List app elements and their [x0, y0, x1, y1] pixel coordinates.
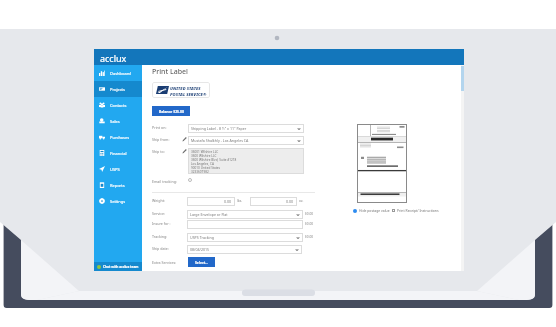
button[interactable]: Large Envelope or Flat	[187, 210, 303, 219]
button[interactable]: USPS Tracking	[187, 233, 303, 242]
button[interactable]: Reports	[94, 177, 142, 193]
staticText: Print Receipt/ Instructions	[397, 208, 439, 213]
staticText: Service:	[152, 211, 165, 216]
staticText: Financial	[110, 151, 127, 156]
staticText: Email tracking:	[152, 179, 177, 184]
button[interactable]: 0.00	[187, 197, 235, 206]
staticText: Tracking:	[152, 234, 168, 239]
button[interactable]: Financial	[94, 145, 142, 161]
staticText: Dashboard	[110, 71, 131, 76]
staticText: Mustafa Shalkhly - Los Angeles CA	[191, 138, 249, 143]
staticText: 36001 Wilshire LLC	[191, 150, 219, 154]
button[interactable]: Select...	[188, 257, 215, 267]
staticText: Insure for :	[152, 221, 171, 226]
staticText: Hide postage value	[359, 208, 390, 213]
staticText: 3600 Wilshire Blvd, Suite #1218	[191, 158, 237, 162]
staticText: 90010 United States	[191, 166, 221, 170]
staticText: $0.00	[305, 212, 314, 216]
button[interactable]: 0.00	[250, 197, 297, 206]
button[interactable]: Chat with acclux team	[94, 262, 142, 271]
button[interactable]: Shipping Label - 8 ½" x 11" Paper	[188, 124, 304, 133]
button[interactable]: Settings	[94, 193, 142, 209]
staticText: Sales	[110, 119, 120, 124]
staticText: Large Envelope or Flat	[190, 212, 228, 217]
staticText: Extra Services:	[152, 260, 177, 265]
button[interactable]: 36001 Wilshire LLC	[188, 148, 304, 174]
staticText: Ship from:	[152, 137, 170, 142]
staticText: 3233607982	[191, 170, 209, 174]
staticText: 0.00	[224, 199, 232, 204]
button[interactable]: Balance $25.00	[152, 106, 190, 116]
staticText: Print Label	[152, 67, 189, 77]
staticText: Projects	[110, 87, 125, 92]
staticText: Balance $25.00	[159, 109, 184, 114]
staticText: 3600 Wilshire LLC	[191, 154, 217, 158]
staticText: Contacts	[110, 103, 127, 108]
staticText: 08/04/2015	[190, 247, 210, 252]
staticText: USPS Tracking	[190, 235, 214, 240]
staticText: acclux	[100, 52, 127, 64]
staticText: USPS	[110, 167, 120, 172]
button[interactable]: Print Receipt Instructions	[392, 209, 395, 212]
staticText: oz.	[299, 199, 304, 203]
button[interactable]: Email tracking	[188, 178, 192, 182]
staticText: Chat with acclux team	[103, 265, 139, 269]
button[interactable]: Contacts	[94, 97, 142, 113]
button[interactable]: 08/04/2015	[187, 245, 302, 254]
staticText: Settings	[110, 199, 126, 204]
staticText: Purchases	[110, 135, 130, 140]
button[interactable]: Projects	[94, 81, 142, 97]
button[interactable]: USPS	[94, 161, 142, 177]
button[interactable]: Purchases	[94, 129, 142, 145]
staticText: Los Angeles, CA	[191, 162, 214, 166]
staticText: Shipping Label - 8 ½" x 11" Paper	[191, 126, 247, 131]
staticText: Reports	[110, 183, 125, 188]
staticText: $0.00	[305, 235, 314, 239]
staticText: Select...	[195, 260, 209, 265]
staticText: 0.00	[286, 199, 294, 204]
staticText: lbs.	[237, 199, 243, 203]
staticText: Print on:	[152, 125, 167, 130]
button[interactable]: Hide postage value	[353, 209, 357, 213]
button[interactable]: Insure for	[187, 220, 303, 229]
staticText: POSTAL SERVICE®	[170, 92, 207, 98]
staticText: Ship to:	[152, 149, 165, 154]
staticText: UNITED STATES	[170, 86, 201, 92]
staticText: $0.00	[305, 222, 314, 226]
button[interactable]: Sales	[94, 113, 142, 129]
button[interactable]: Mustafa Shalkhly - Los Angeles CA	[188, 136, 304, 145]
staticText: Ship date:	[152, 246, 169, 251]
staticText: Weight:	[152, 198, 165, 203]
button[interactable]: Dashboard	[94, 65, 142, 81]
